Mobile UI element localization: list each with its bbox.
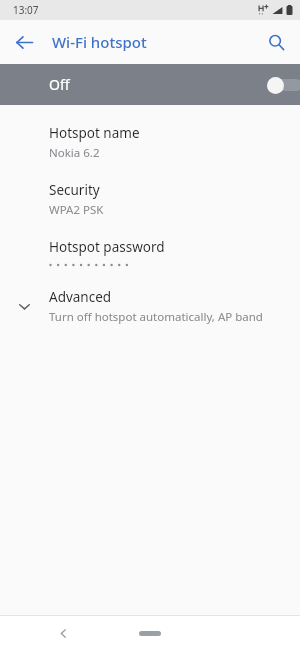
button[interactable]: Hotspot password [0,228,300,278]
staticText: Off [49,75,70,94]
button[interactable]: Back [6,24,42,60]
button[interactable]: Hotspot name [0,114,300,171]
button[interactable]: Security [0,171,300,228]
button[interactable]: Home [130,624,170,642]
button[interactable]: Search [258,24,294,60]
staticText: 13:07 [13,3,39,17]
staticText: WPA2 PSK [49,202,104,218]
staticText: Nokia 6.2 [49,145,100,161]
staticText: Wi-Fi hotspot [52,32,147,52]
staticText: Hotspot name [49,124,140,142]
staticText: Turn off hotspot automatically, AP band [49,309,263,325]
staticText: Security [49,181,100,199]
button[interactable]: Off [0,64,300,105]
button[interactable]: Back [48,618,78,648]
staticText: Advanced [49,288,112,306]
staticText: Hotspot password [49,238,165,256]
button[interactable]: Advanced [0,278,300,335]
